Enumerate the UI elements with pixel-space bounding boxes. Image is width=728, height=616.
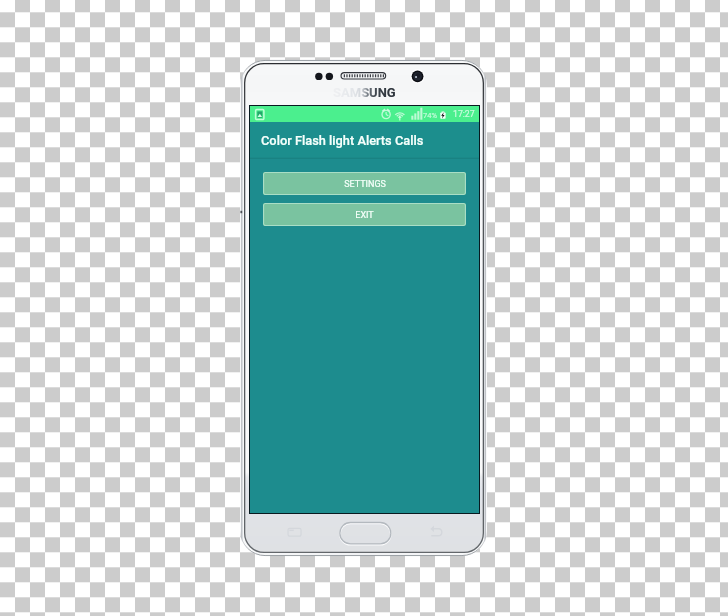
staticText: SETTINGS — [344, 179, 386, 190]
staticText: EXIT — [355, 210, 374, 221]
button[interactable]: SETTINGS — [263, 172, 466, 195]
staticText: 74% — [423, 111, 438, 120]
button[interactable]: EXIT — [263, 203, 466, 226]
staticText: Color Flash light Alerts Calls — [261, 133, 424, 148]
staticText: SAMSUNG — [333, 85, 396, 99]
staticText: 17:27 — [453, 109, 475, 119]
